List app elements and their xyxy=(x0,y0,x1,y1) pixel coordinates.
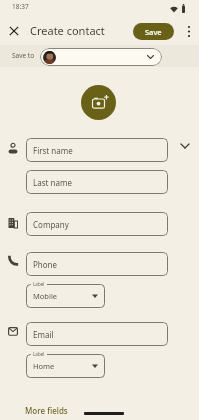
button[interactable]: First name xyxy=(26,138,168,162)
button[interactable]: Company xyxy=(26,212,168,236)
staticText: Home xyxy=(33,361,55,371)
button[interactable]: Home xyxy=(26,354,105,378)
staticText: Mobile xyxy=(33,291,58,301)
staticText: Label xyxy=(33,281,45,287)
button[interactable] xyxy=(9,26,19,36)
button[interactable] xyxy=(180,143,190,149)
staticText: Last name xyxy=(33,177,72,188)
button[interactable] xyxy=(81,85,116,120)
button[interactable]: Last name xyxy=(26,170,168,194)
button[interactable]: Save xyxy=(133,23,174,40)
button[interactable]: More fields xyxy=(20,400,80,420)
button[interactable] xyxy=(185,25,193,38)
staticText: Save to xyxy=(12,51,35,60)
staticText: More fields xyxy=(25,405,68,416)
staticText: Company xyxy=(33,219,69,230)
button[interactable]: Email xyxy=(26,322,168,346)
staticText: Create contact xyxy=(30,23,105,38)
staticText: First name xyxy=(33,145,73,156)
staticText: Email xyxy=(33,329,54,340)
button[interactable]: Mobile xyxy=(26,284,105,308)
staticText: Phone xyxy=(33,259,58,270)
staticText: Label xyxy=(33,351,45,357)
button[interactable] xyxy=(40,48,162,66)
staticText: Save xyxy=(145,27,162,37)
button[interactable]: Phone xyxy=(26,252,168,276)
staticText: 18:37 xyxy=(12,2,29,11)
